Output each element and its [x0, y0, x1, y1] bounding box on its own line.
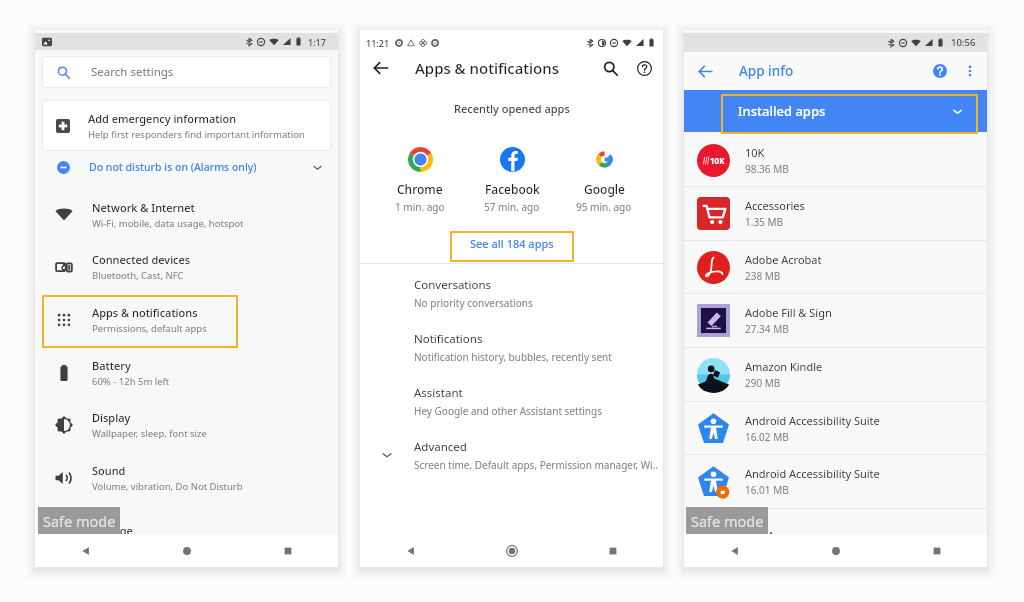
- staticText: Network & Internet: [92, 200, 195, 215]
- button[interactable]: Sound: [35, 451, 338, 504]
- staticText: Display: [92, 410, 131, 425]
- staticText: AnkiApp: [745, 528, 789, 543]
- staticText: Android Accessibility Suite: [745, 466, 880, 481]
- staticText: 16.01 MB: [745, 483, 789, 497]
- staticText: Wallpaper, sleep, font size: [92, 427, 207, 440]
- staticText: Accessories: [745, 198, 805, 213]
- staticText: Safe mode: [43, 511, 116, 531]
- staticText: Notification history, bubbles, recently …: [414, 350, 612, 364]
- staticText: 238 MB: [745, 269, 781, 283]
- staticText: 1:17: [308, 36, 326, 48]
- button[interactable]: Recents: [562, 534, 663, 567]
- button[interactable]: Help: [923, 52, 957, 90]
- button[interactable]: Advanced: [360, 428, 663, 482]
- button[interactable]: Adobe Fill & Sign: [684, 294, 987, 347]
- button[interactable]: Recents: [237, 534, 338, 567]
- button[interactable]: Back: [684, 52, 727, 90]
- staticText: 10K: [710, 155, 725, 166]
- button[interactable]: Recents: [886, 534, 987, 567]
- staticText: 57 min. ago: [484, 200, 540, 214]
- button[interactable]: Home: [785, 534, 886, 567]
- button[interactable]: 10K: [684, 134, 987, 186]
- staticText: 60% - 12h 5m left: [92, 375, 170, 388]
- button[interactable]: Back: [360, 534, 461, 567]
- staticText: See all 184 apps: [470, 236, 554, 251]
- button[interactable]: Adobe Acrobat: [684, 241, 987, 293]
- staticText: Wi-Fi, mobile, data usage, hotspot: [92, 217, 244, 230]
- button[interactable]: Home: [461, 534, 562, 567]
- staticText: Do not disturb is on (Alarms only): [89, 160, 257, 174]
- button[interactable]: Google: [558, 147, 650, 214]
- button[interactable]: Assistant: [360, 374, 663, 428]
- staticText: Search settings: [91, 64, 174, 80]
- staticText: Advanced: [414, 439, 467, 455]
- staticText: Storage: [92, 523, 133, 538]
- button[interactable]: Chrome: [374, 147, 466, 214]
- button[interactable]: Android Accessibility Suite: [684, 402, 987, 454]
- button[interactable]: Accessories: [684, 187, 987, 240]
- staticText: Screen time, Default apps, Permission ma…: [414, 458, 659, 472]
- staticText: No priority conversations: [414, 296, 533, 310]
- staticText: Notifications: [414, 331, 483, 347]
- staticText: Assistant: [414, 385, 463, 401]
- staticText: Adobe Fill & Sign: [745, 305, 832, 320]
- staticText: Connected devices: [92, 252, 191, 267]
- button[interactable]: Notifications: [360, 320, 663, 374]
- button[interactable]: Facebook: [466, 147, 558, 214]
- button[interactable]: Battery: [35, 346, 338, 399]
- staticText: 27.34 MB: [745, 322, 789, 336]
- staticText: Amazon Kindle: [745, 359, 823, 374]
- button[interactable]: Help: [627, 51, 661, 85]
- staticText: 95 min. ago: [576, 200, 632, 214]
- button[interactable]: Do not disturb is on (Alarms only): [35, 151, 338, 183]
- button[interactable]: Back: [360, 51, 402, 85]
- staticText: Battery: [92, 358, 131, 373]
- button[interactable]: Android Accessibility Suite: [684, 455, 987, 508]
- button[interactable]: See all 184 apps: [450, 228, 574, 259]
- staticText: Permissions, default apps: [92, 322, 207, 335]
- button[interactable]: Search settings: [42, 56, 331, 88]
- staticText: App info: [739, 62, 794, 80]
- button[interactable]: Connected devices: [35, 241, 338, 293]
- staticText: Google: [584, 181, 625, 197]
- button[interactable]: AnkiApp: [684, 509, 987, 562]
- staticText: Safe mode: [691, 511, 764, 531]
- staticText: 1 min. ago: [395, 200, 445, 214]
- button[interactable]: Display: [35, 399, 338, 451]
- staticText: Apps & notifications: [92, 305, 198, 320]
- button[interactable]: More options: [957, 52, 983, 90]
- staticText: 10K: [745, 145, 765, 160]
- staticText: Bluetooth, Cast, NFC: [92, 269, 184, 282]
- button[interactable]: Installed apps: [684, 90, 987, 132]
- staticText: Chrome: [397, 181, 443, 197]
- button[interactable]: Network & Internet: [35, 188, 338, 241]
- staticText: Conversations: [414, 277, 492, 293]
- staticText: 290 MB: [745, 376, 781, 390]
- staticText: 98.36 MB: [745, 162, 789, 176]
- staticText: Help first responders find important inf…: [88, 128, 305, 141]
- staticText: Sound: [92, 463, 126, 478]
- button[interactable]: Conversations: [360, 266, 663, 320]
- button[interactable]: Search: [593, 51, 627, 85]
- staticText: Adobe Acrobat: [745, 252, 822, 267]
- button[interactable]: Apps & notifications: [35, 293, 338, 346]
- button[interactable]: Back: [35, 534, 136, 567]
- staticText: Add emergency information: [88, 111, 237, 126]
- staticText: 11:21: [366, 37, 390, 49]
- button[interactable]: Amazon Kindle: [684, 348, 987, 401]
- staticText: 10:56: [951, 36, 976, 49]
- staticText: 1.35 MB: [745, 215, 784, 229]
- button[interactable]: Storage: [35, 504, 338, 557]
- staticText: Volume, vibration, Do Not Disturb: [92, 480, 243, 493]
- staticText: Recently opened apps: [454, 101, 570, 116]
- staticText: Facebook: [485, 181, 540, 197]
- staticText: Hey Google and other Assistant settings: [414, 404, 602, 418]
- button[interactable]: Back: [684, 534, 785, 567]
- staticText: Android Accessibility Suite: [745, 413, 880, 428]
- button[interactable]: Add emergency information: [42, 100, 331, 151]
- staticText: 16.02 MB: [745, 430, 789, 444]
- staticText: Installed apps: [738, 102, 826, 120]
- button[interactable]: Home: [136, 534, 237, 567]
- staticText: Apps & notifications: [415, 58, 559, 78]
